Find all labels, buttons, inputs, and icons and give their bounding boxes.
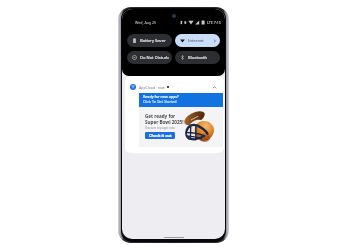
other: Open internet settings xyxy=(213,39,217,43)
staticText: Battery Saver xyxy=(140,38,166,44)
staticText: Do Not Disturb xyxy=(140,55,169,61)
button[interactable]: Check it out xyxy=(145,132,175,139)
button[interactable]: Do Not Disturb xyxy=(127,51,172,64)
staticText: Discover top apps now xyxy=(145,126,175,130)
button[interactable]: Collapse notification xyxy=(212,85,217,90)
staticText: LTE 7:15 xyxy=(207,20,221,25)
button[interactable]: Ready for new apps? xyxy=(139,93,223,107)
staticText: Internet xyxy=(188,38,204,44)
button[interactable]: Internet xyxy=(175,34,220,47)
staticText: Check it out xyxy=(149,133,172,138)
staticText: Super Bowl 2025! xyxy=(145,119,184,125)
staticText: Wed, Aug 25 xyxy=(135,20,157,25)
button[interactable]: Battery Saver xyxy=(127,34,172,47)
staticText: Ready for new apps? xyxy=(143,94,179,99)
staticText: AppCloud · now xyxy=(139,85,165,90)
staticText: Click To Get Started xyxy=(143,99,177,104)
staticText: Bluetooth xyxy=(188,55,207,61)
staticText: Get ready for xyxy=(145,113,176,119)
button[interactable]: Bluetooth xyxy=(175,51,220,64)
